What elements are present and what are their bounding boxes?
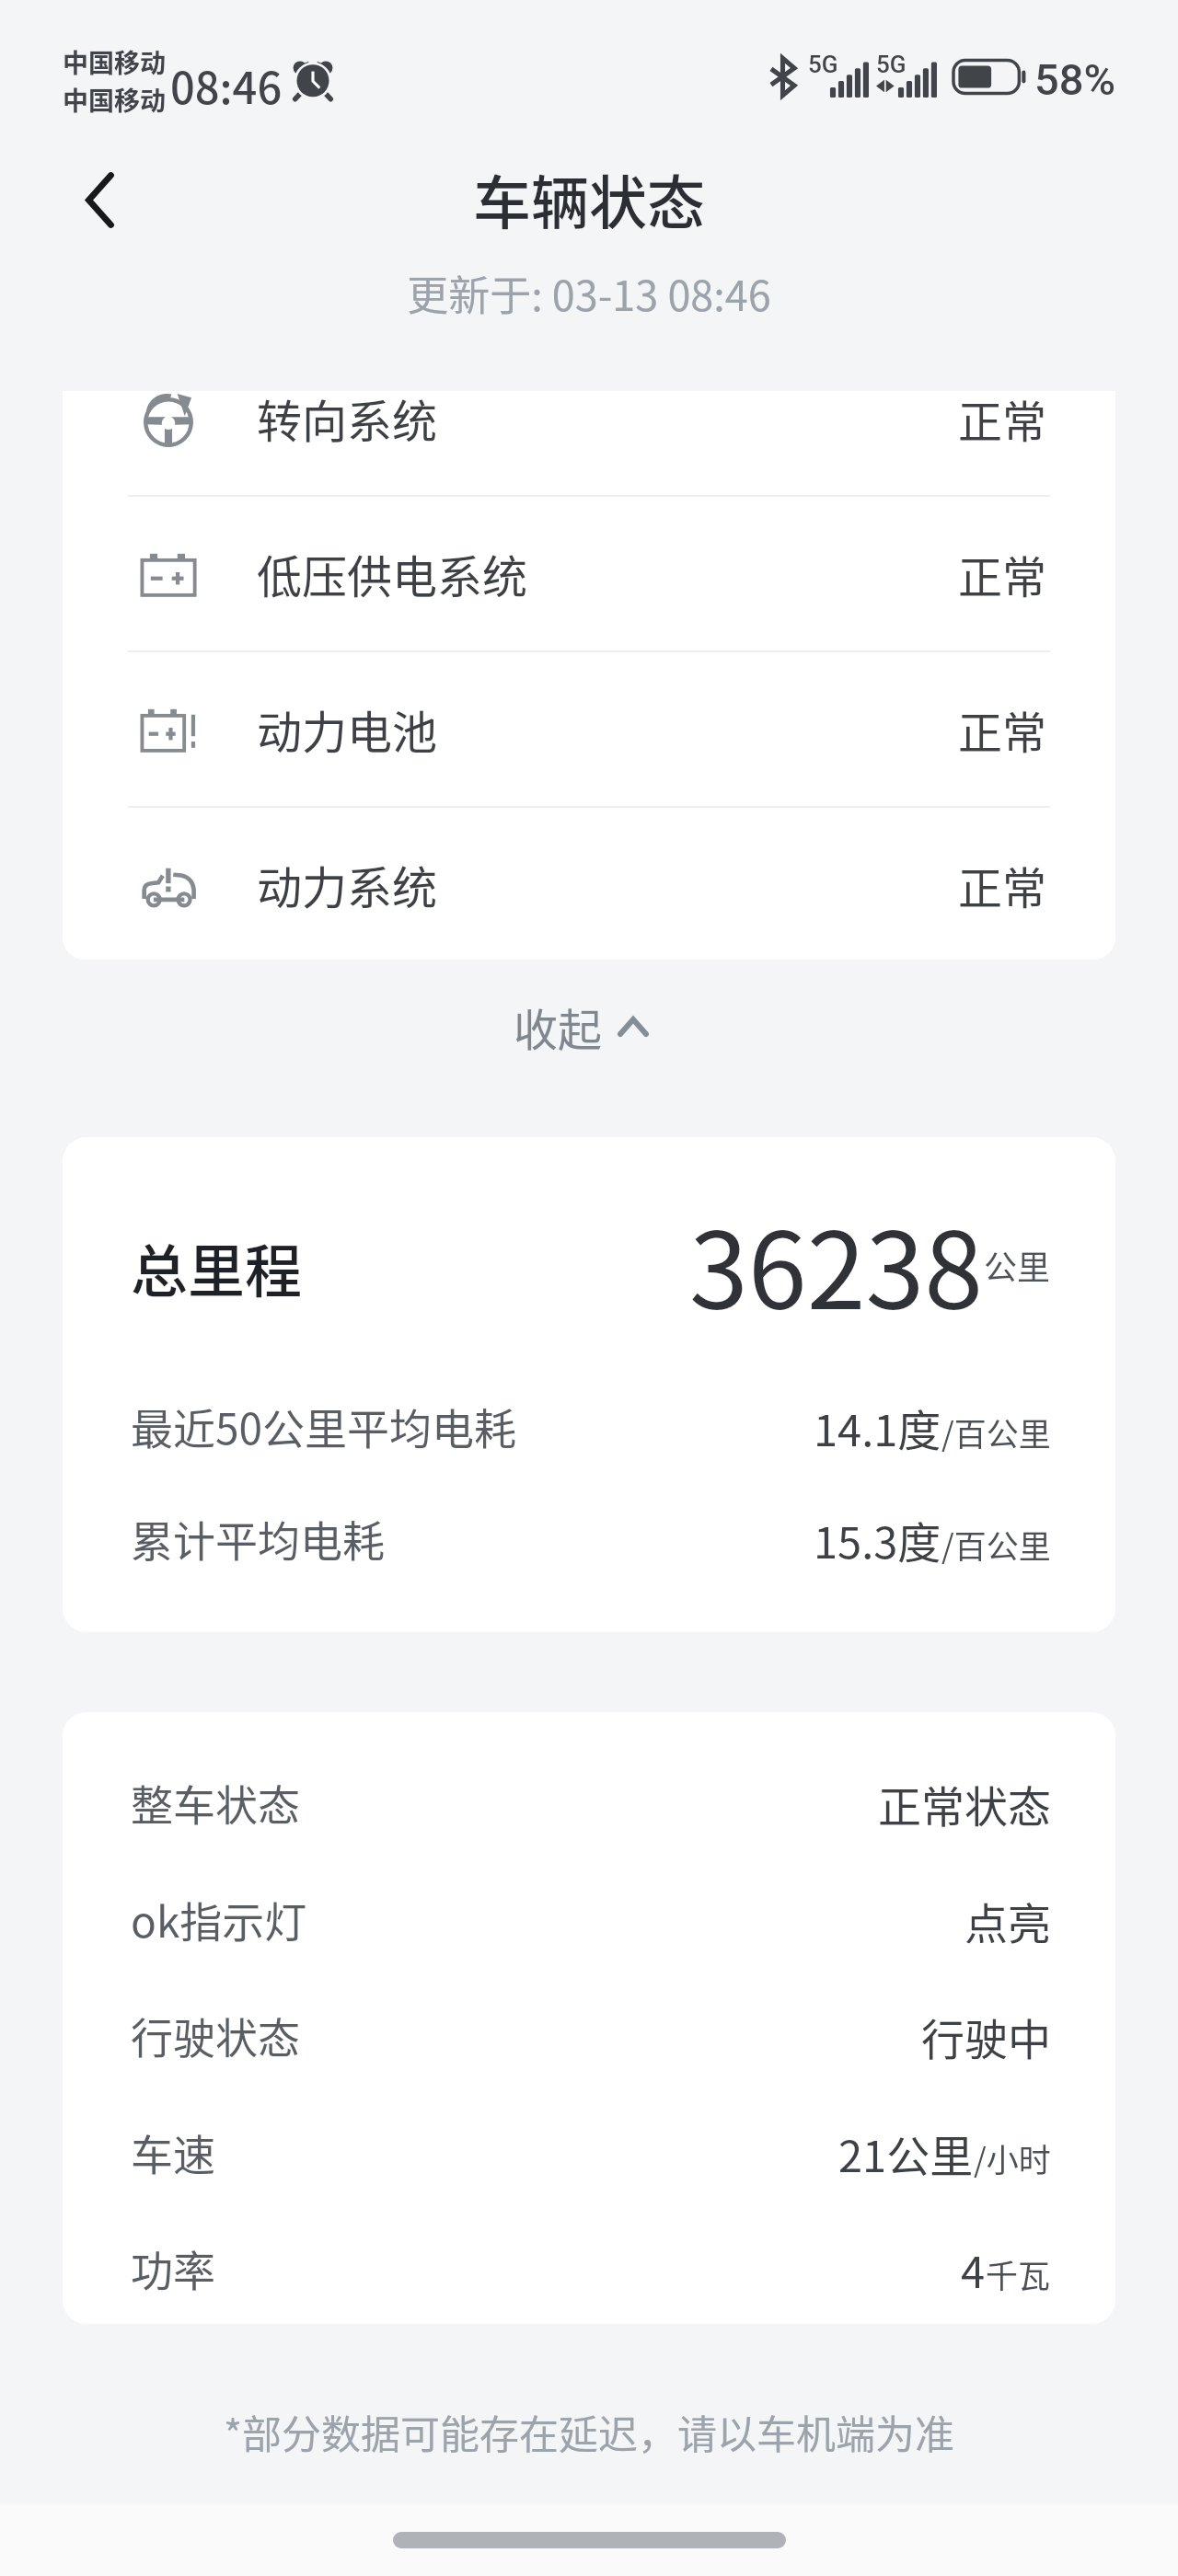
staticText: 5G <box>808 51 838 78</box>
button[interactable]: 累计平均电耗 <box>63 1508 1115 1569</box>
button[interactable]: 低压供电系统 <box>63 497 1115 650</box>
staticText: 更新于: 03-13 08:46 <box>0 263 1178 323</box>
button[interactable]: 车速 <box>63 2122 1115 2182</box>
staticText: 58% <box>1034 54 1116 105</box>
staticText: 低压供电系统 <box>257 541 528 606</box>
staticText: *部分数据可能存在延迟，请以车机端为准 <box>0 2403 1178 2460</box>
staticText: 最近50公里平均电耗 <box>131 1396 517 1456</box>
staticText: 5G <box>876 51 907 78</box>
staticText: /小时 <box>974 2134 1051 2181</box>
staticText: 正常 <box>958 542 1047 606</box>
button[interactable]: 转向系统 <box>63 391 1115 495</box>
button[interactable]: 功率 <box>63 2237 1115 2298</box>
staticText: 收起 <box>514 995 603 1059</box>
staticText: 车辆状态 <box>0 156 1178 240</box>
staticText: 点亮 <box>964 1889 1051 1949</box>
staticText: 动力系统 <box>257 852 438 917</box>
staticText: 21公里 <box>838 2122 974 2182</box>
staticText: 千瓦 <box>986 2250 1051 2297</box>
staticText: 15.3度 <box>814 1508 941 1569</box>
staticText: 14.1度 <box>814 1396 941 1456</box>
button[interactable]: 动力系统 <box>63 808 1115 960</box>
staticText: 4 <box>961 2237 986 2298</box>
staticText: 车速 <box>131 2122 215 2182</box>
staticText: 08:46 <box>170 53 283 116</box>
staticText: 正常 <box>958 697 1047 762</box>
staticText: 整车状态 <box>131 1772 300 1833</box>
button[interactable]: 整车状态 <box>63 1772 1115 1833</box>
staticText: ok指示灯 <box>131 1889 307 1949</box>
staticText: /百公里 <box>941 1521 1051 1568</box>
staticText: 动力电池 <box>257 696 438 762</box>
staticText: 正常 <box>958 391 1047 451</box>
button[interactable]: 动力电池 <box>63 652 1115 806</box>
staticText: 36238 <box>689 1187 984 1340</box>
staticText: 正常 <box>958 853 1047 917</box>
staticText: 行驶状态 <box>131 2005 300 2065</box>
button[interactable]: Back <box>61 161 138 238</box>
button[interactable]: 最近50公里平均电耗 <box>63 1396 1115 1456</box>
button[interactable]: ok指示灯 <box>63 1889 1115 1949</box>
staticText: 累计平均电耗 <box>131 1508 385 1569</box>
button[interactable]: 收起 <box>486 972 676 1081</box>
staticText: 中国移动 <box>63 81 167 119</box>
staticText: 功率 <box>131 2237 215 2298</box>
staticText: 行驶中 <box>921 2005 1051 2065</box>
staticText: 正常状态 <box>878 1772 1051 1833</box>
staticText: 公里 <box>984 1241 1051 1289</box>
staticText: /百公里 <box>941 1409 1051 1455</box>
staticText: 总里程 <box>131 1226 303 1309</box>
button[interactable]: 行驶状态 <box>63 2005 1115 2065</box>
staticText: 转向系统 <box>257 391 438 451</box>
staticText: 中国移动 <box>63 43 167 81</box>
